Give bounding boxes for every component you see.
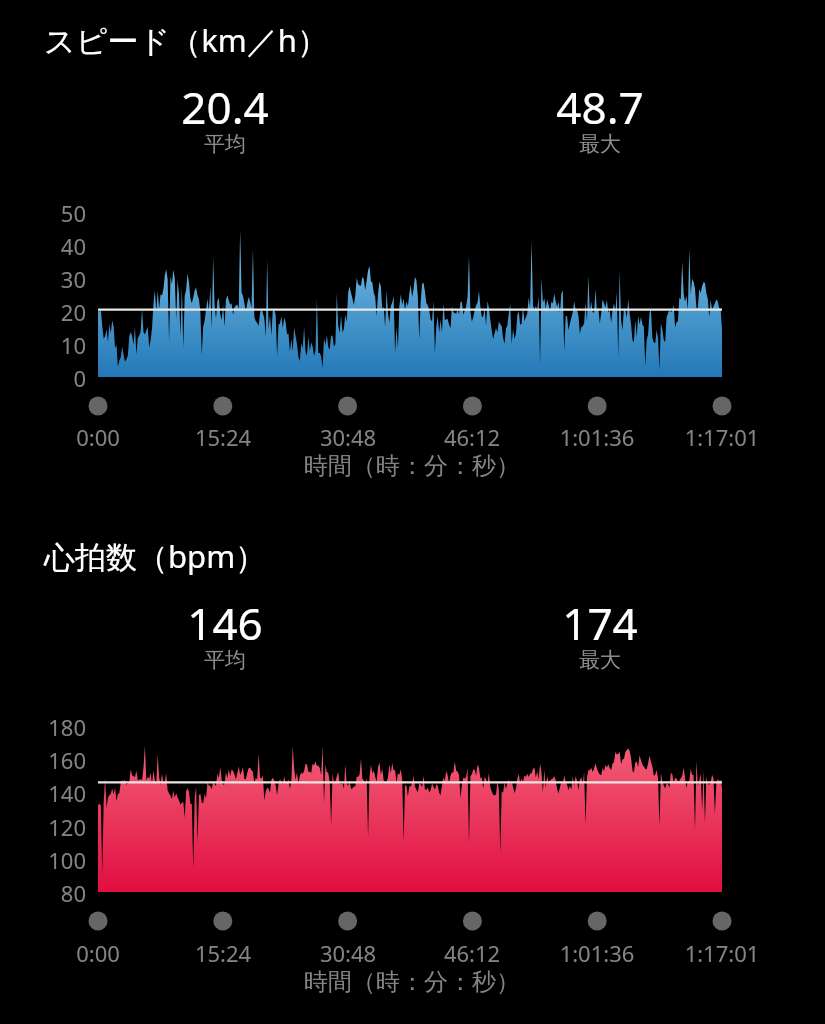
staticText: 0 (0, 363, 86, 393)
staticText: 100 (0, 845, 86, 875)
staticText: スピード（km／h） (44, 19, 328, 61)
staticText: 時間（時：分：秒） (212, 451, 612, 481)
staticText: 最大 (520, 647, 680, 673)
staticText: 146 (105, 593, 345, 653)
staticText: 30:48 (268, 938, 428, 968)
staticText: 平均 (145, 647, 305, 673)
staticText: 1:01:36 (517, 422, 677, 452)
button[interactable]: Speed chart (0, 0, 825, 1024)
staticText: 時間（時：分：秒） (212, 967, 612, 997)
staticText: 最大 (520, 131, 680, 157)
staticText: 20 (0, 297, 86, 327)
staticText: 1:01:36 (517, 938, 677, 968)
staticText: 174 (480, 593, 720, 653)
staticText: 15:24 (143, 938, 303, 968)
staticText: 46:12 (392, 938, 552, 968)
staticText: 心拍数（bpm） (44, 535, 267, 577)
staticText: 30 (0, 264, 86, 294)
staticText: 30:48 (268, 422, 428, 452)
staticText: 20.4 (105, 77, 345, 137)
staticText: 160 (0, 745, 86, 775)
staticText: 180 (0, 712, 86, 742)
staticText: 48.7 (480, 77, 720, 137)
staticText: 平均 (145, 131, 305, 157)
staticText: 10 (0, 330, 86, 360)
staticText: 40 (0, 231, 86, 261)
staticText: 50 (0, 198, 86, 228)
staticText: 1:17:01 (642, 938, 802, 968)
staticText: 120 (0, 812, 86, 842)
staticText: 140 (0, 778, 86, 808)
staticText: 15:24 (143, 422, 303, 452)
staticText: 0:00 (18, 938, 178, 968)
staticText: 46:12 (392, 422, 552, 452)
button[interactable]: Heart rate chart (0, 0, 825, 1024)
staticText: 80 (0, 878, 86, 908)
staticText: 1:17:01 (642, 422, 802, 452)
staticText: 0:00 (18, 422, 178, 452)
